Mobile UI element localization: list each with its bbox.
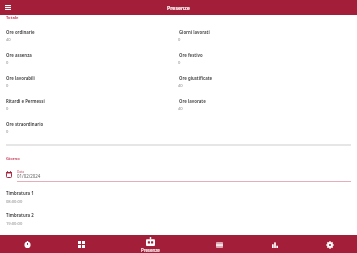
button[interactable]: Data xyxy=(4,168,351,185)
staticText: Ore lavorabili xyxy=(6,75,35,81)
staticText: 0 xyxy=(6,129,9,135)
staticText: Giorno xyxy=(6,156,20,162)
staticText: Presenze xyxy=(141,247,160,253)
staticText: 40 xyxy=(178,106,183,112)
button[interactable]: Impostazioni xyxy=(302,235,357,253)
staticText: 0 xyxy=(178,37,181,43)
staticText: 0 xyxy=(178,60,181,66)
staticText: Ore giustificate xyxy=(179,75,213,81)
staticText: Presenze xyxy=(167,4,190,11)
staticText: Timbratura 2 xyxy=(6,212,34,218)
staticText: Ore lavorate xyxy=(179,98,206,104)
button[interactable]: Presenze xyxy=(108,235,192,253)
staticText: 0 xyxy=(6,106,9,112)
staticText: 01/02/2024 xyxy=(17,173,41,179)
staticText: 40 xyxy=(6,37,11,43)
staticText: Ore straordinario xyxy=(6,121,44,127)
staticText: Ore festivo xyxy=(179,52,203,58)
button[interactable]: Timbrature xyxy=(0,235,54,253)
staticText: 0 xyxy=(6,83,9,89)
staticText: Totale xyxy=(6,15,19,21)
button[interactable]: Menu xyxy=(3,3,12,12)
button[interactable]: Dashboard xyxy=(54,235,108,253)
staticText: 19:00:00 xyxy=(6,221,23,227)
staticText: Ritardi e Permessi xyxy=(6,98,45,104)
staticText: Timbratura 1 xyxy=(6,190,34,196)
staticText: Ore assenza xyxy=(6,52,32,58)
staticText: 0 xyxy=(6,60,9,66)
button[interactable]: Badge xyxy=(192,235,247,253)
staticText: Ore ordinarie xyxy=(6,29,35,35)
staticText: Data xyxy=(17,170,25,174)
staticText: 08:00:00 xyxy=(6,199,23,205)
button[interactable]: Statistiche xyxy=(247,235,302,253)
staticText: 40 xyxy=(178,83,183,89)
staticText: Giorni lavorati xyxy=(179,29,210,35)
